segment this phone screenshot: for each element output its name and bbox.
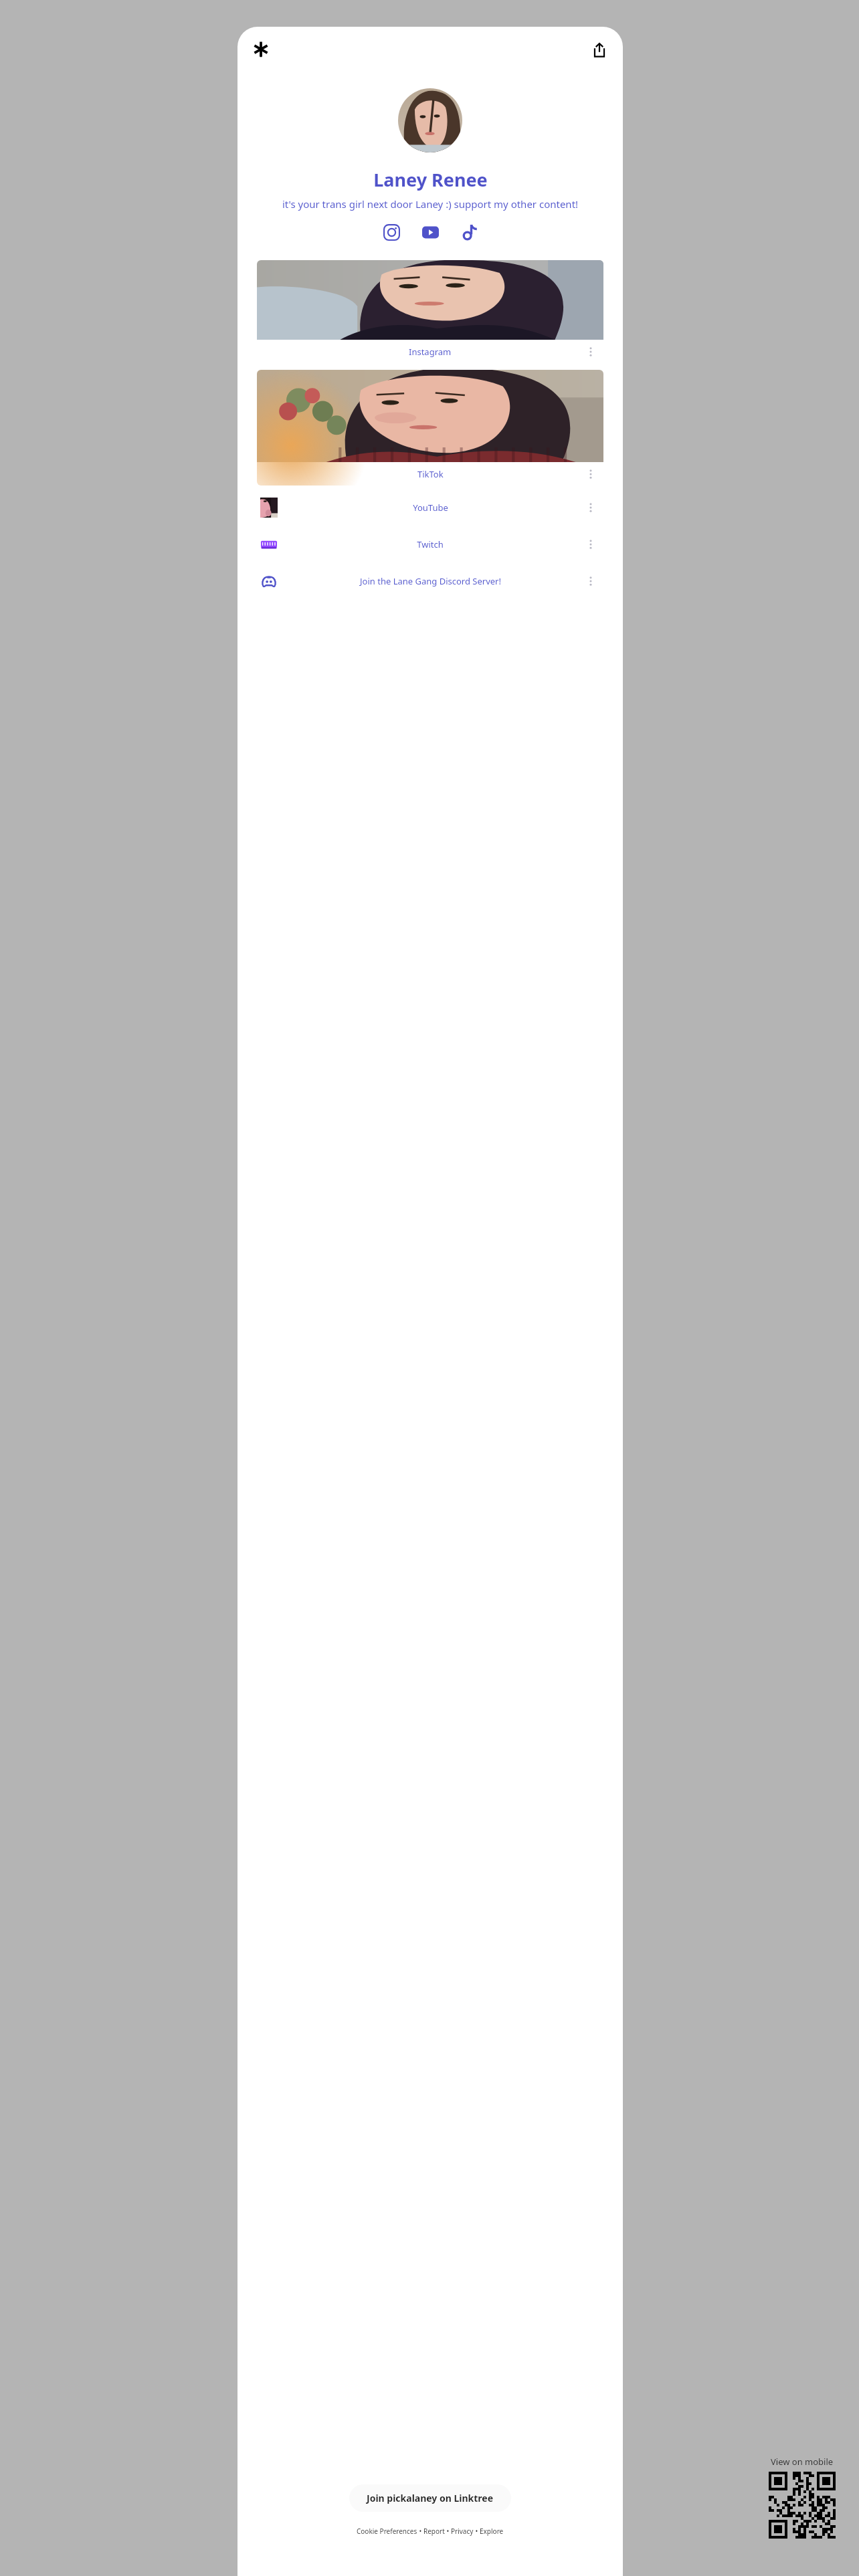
staticText: Cookie Preferences — [357, 2527, 417, 2536]
button[interactable]: Join the Lane Gang Discord Server! — [257, 566, 603, 596]
staticText: Join pickalaney on Linktree — [367, 2492, 494, 2504]
button[interactable]: Linktree logo — [246, 35, 276, 66]
staticText: Privacy — [451, 2527, 474, 2536]
staticText: Join the Lane Gang Discord Server! — [360, 575, 501, 587]
staticText: it's your trans girl next door Laney :) … — [244, 197, 616, 211]
button[interactable]: Twitch — [257, 529, 603, 559]
button[interactable]: More options for YouTube — [583, 500, 598, 515]
staticText: • — [474, 2527, 480, 2536]
button[interactable]: TikTok — [457, 220, 481, 244]
button[interactable]: Profile photo of Laney Renee — [398, 88, 462, 152]
staticText: TikTok — [417, 468, 444, 480]
button[interactable]: Explore — [480, 2527, 504, 2536]
staticText: Laney Renee — [373, 167, 488, 192]
staticText: View on mobile — [771, 2456, 834, 2468]
button[interactable]: Privacy — [451, 2527, 474, 2536]
button[interactable]: Share — [584, 35, 615, 66]
button[interactable]: Join pickalaney on Linktree — [349, 2484, 511, 2512]
button[interactable]: TikTok — [257, 370, 603, 486]
button[interactable]: More options for TikTok — [583, 467, 598, 481]
staticText: Explore — [480, 2527, 504, 2536]
staticText: Instagram — [409, 346, 452, 358]
button[interactable]: Instagram — [379, 220, 403, 244]
button[interactable]: YouTube — [257, 492, 603, 522]
button[interactable]: Report — [423, 2527, 445, 2536]
button[interactable]: More options for Instagram — [583, 344, 598, 359]
staticText: YouTube — [413, 502, 448, 514]
staticText: Report — [423, 2527, 445, 2536]
staticText: Twitch — [417, 538, 444, 550]
button[interactable]: Instagram — [257, 260, 603, 363]
button[interactable]: More options for Join the Lane Gang Disc… — [583, 574, 598, 588]
button[interactable]: YouTube — [418, 220, 442, 244]
staticText: • — [417, 2527, 423, 2536]
button[interactable]: More options for Twitch — [583, 537, 598, 552]
button[interactable]: Cookie Preferences — [357, 2527, 417, 2536]
other: QR code to view on mobile — [769, 2472, 836, 2539]
staticText: • — [445, 2527, 451, 2536]
